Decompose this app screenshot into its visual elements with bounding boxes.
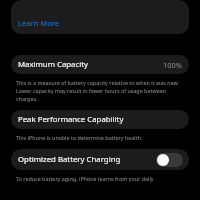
staticText: Learn More (18, 18, 60, 28)
staticText: Optimized Battery Charging (18, 154, 121, 165)
button[interactable]: Peak Performance Capability (11, 110, 189, 129)
button[interactable]: Optimized Battery Charging toggle (156, 153, 183, 167)
button[interactable]: Learn More (11, 0, 189, 34)
button[interactable]: Maximum Capacity (11, 55, 189, 74)
button[interactable]: Optimized Battery Charging (11, 149, 189, 170)
staticText: This iPhone is unable to determine batte… (16, 134, 143, 141)
staticText: Peak Performance Capability (18, 114, 124, 125)
staticText: This is a measure of battery capacity re… (16, 79, 184, 103)
staticText: To reduce battery aging, iPhone learns f… (16, 175, 154, 182)
staticText: 100% (163, 60, 182, 70)
staticText: Maximum Capacity (18, 59, 89, 70)
